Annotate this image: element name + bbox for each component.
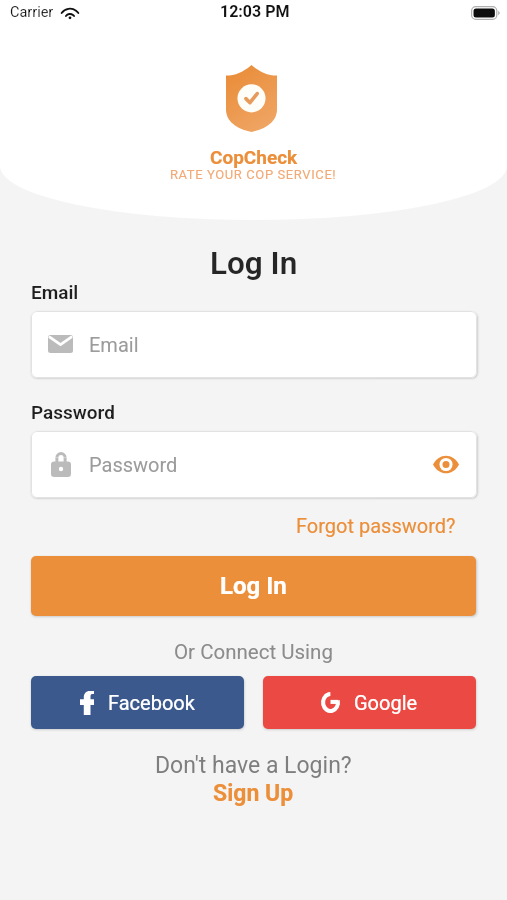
staticText: Email xyxy=(89,333,139,356)
staticText: Log In xyxy=(220,572,287,600)
button[interactable]: Password xyxy=(31,431,477,498)
staticText: Password xyxy=(31,401,115,423)
button[interactable]: Show password xyxy=(433,455,459,474)
staticText: Log In xyxy=(210,245,298,282)
staticText: Facebook xyxy=(108,691,195,714)
staticText: RATE YOUR COP SERVICE! xyxy=(170,167,337,182)
staticText: Forgot password? xyxy=(296,514,456,537)
staticText: Sign Up xyxy=(213,780,294,807)
button[interactable]: Sign Up xyxy=(213,780,294,807)
staticText: Email xyxy=(31,281,79,303)
button[interactable]: Email xyxy=(31,311,477,378)
staticText: Carrier xyxy=(10,4,54,21)
staticText: Or Connect Using xyxy=(174,640,333,664)
button[interactable]: Google xyxy=(263,676,476,729)
staticText: CopCheck xyxy=(210,146,298,168)
button[interactable]: Facebook xyxy=(31,676,244,729)
staticText: Google xyxy=(354,691,418,714)
staticText: Password xyxy=(89,453,178,476)
button[interactable]: Forgot password? xyxy=(296,514,456,537)
button[interactable]: Log In xyxy=(31,556,476,616)
staticText: Don't have a Login? xyxy=(155,752,352,779)
staticText: 12:03 PM xyxy=(220,2,290,21)
